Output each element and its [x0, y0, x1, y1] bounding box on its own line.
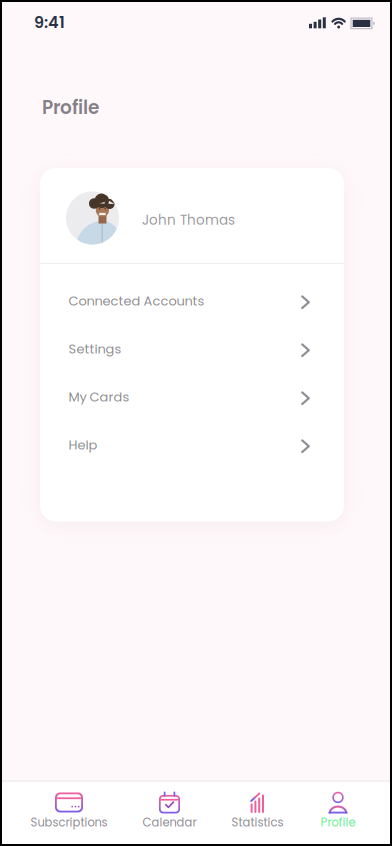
- button[interactable]: Subscriptions: [30, 790, 107, 832]
- staticText: Statistics: [231, 814, 283, 830]
- staticText: Help: [68, 436, 97, 454]
- button[interactable]: Settings: [40, 325, 344, 373]
- staticText: Subscriptions: [30, 814, 107, 830]
- button[interactable]: Calendar: [142, 790, 196, 832]
- staticText: Connected Accounts: [68, 292, 204, 310]
- button[interactable]: Statistics: [231, 790, 283, 832]
- staticText: Settings: [68, 340, 121, 358]
- staticText: John Thomas: [142, 211, 235, 229]
- staticText: Profile: [42, 95, 99, 120]
- button[interactable]: Help: [40, 421, 344, 469]
- staticText: Calendar: [142, 814, 196, 830]
- staticText: Profile: [320, 814, 355, 830]
- button[interactable]: My Cards: [40, 373, 344, 421]
- staticText: 9:41: [34, 11, 65, 34]
- staticText: My Cards: [68, 388, 129, 406]
- button[interactable]: Profile: [320, 790, 355, 832]
- button[interactable]: Connected Accounts: [40, 277, 344, 325]
